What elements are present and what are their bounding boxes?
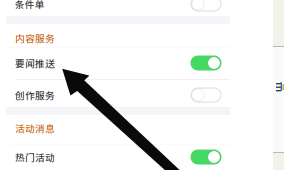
button[interactable]: 创作服务 xyxy=(6,80,230,110)
staticText: 活动消息 xyxy=(15,121,55,135)
staticText: 热门活动 xyxy=(15,150,55,164)
staticText: 要闻推送 xyxy=(15,56,55,70)
button[interactable]: 条件单 xyxy=(6,0,230,19)
staticText: 内容服务 xyxy=(15,31,55,45)
button[interactable]: 要闻推送 xyxy=(6,48,230,78)
button[interactable]: 热门活动 xyxy=(6,142,230,170)
staticText: 创作服务 xyxy=(15,88,55,102)
staticText: 条件单 xyxy=(15,0,45,11)
